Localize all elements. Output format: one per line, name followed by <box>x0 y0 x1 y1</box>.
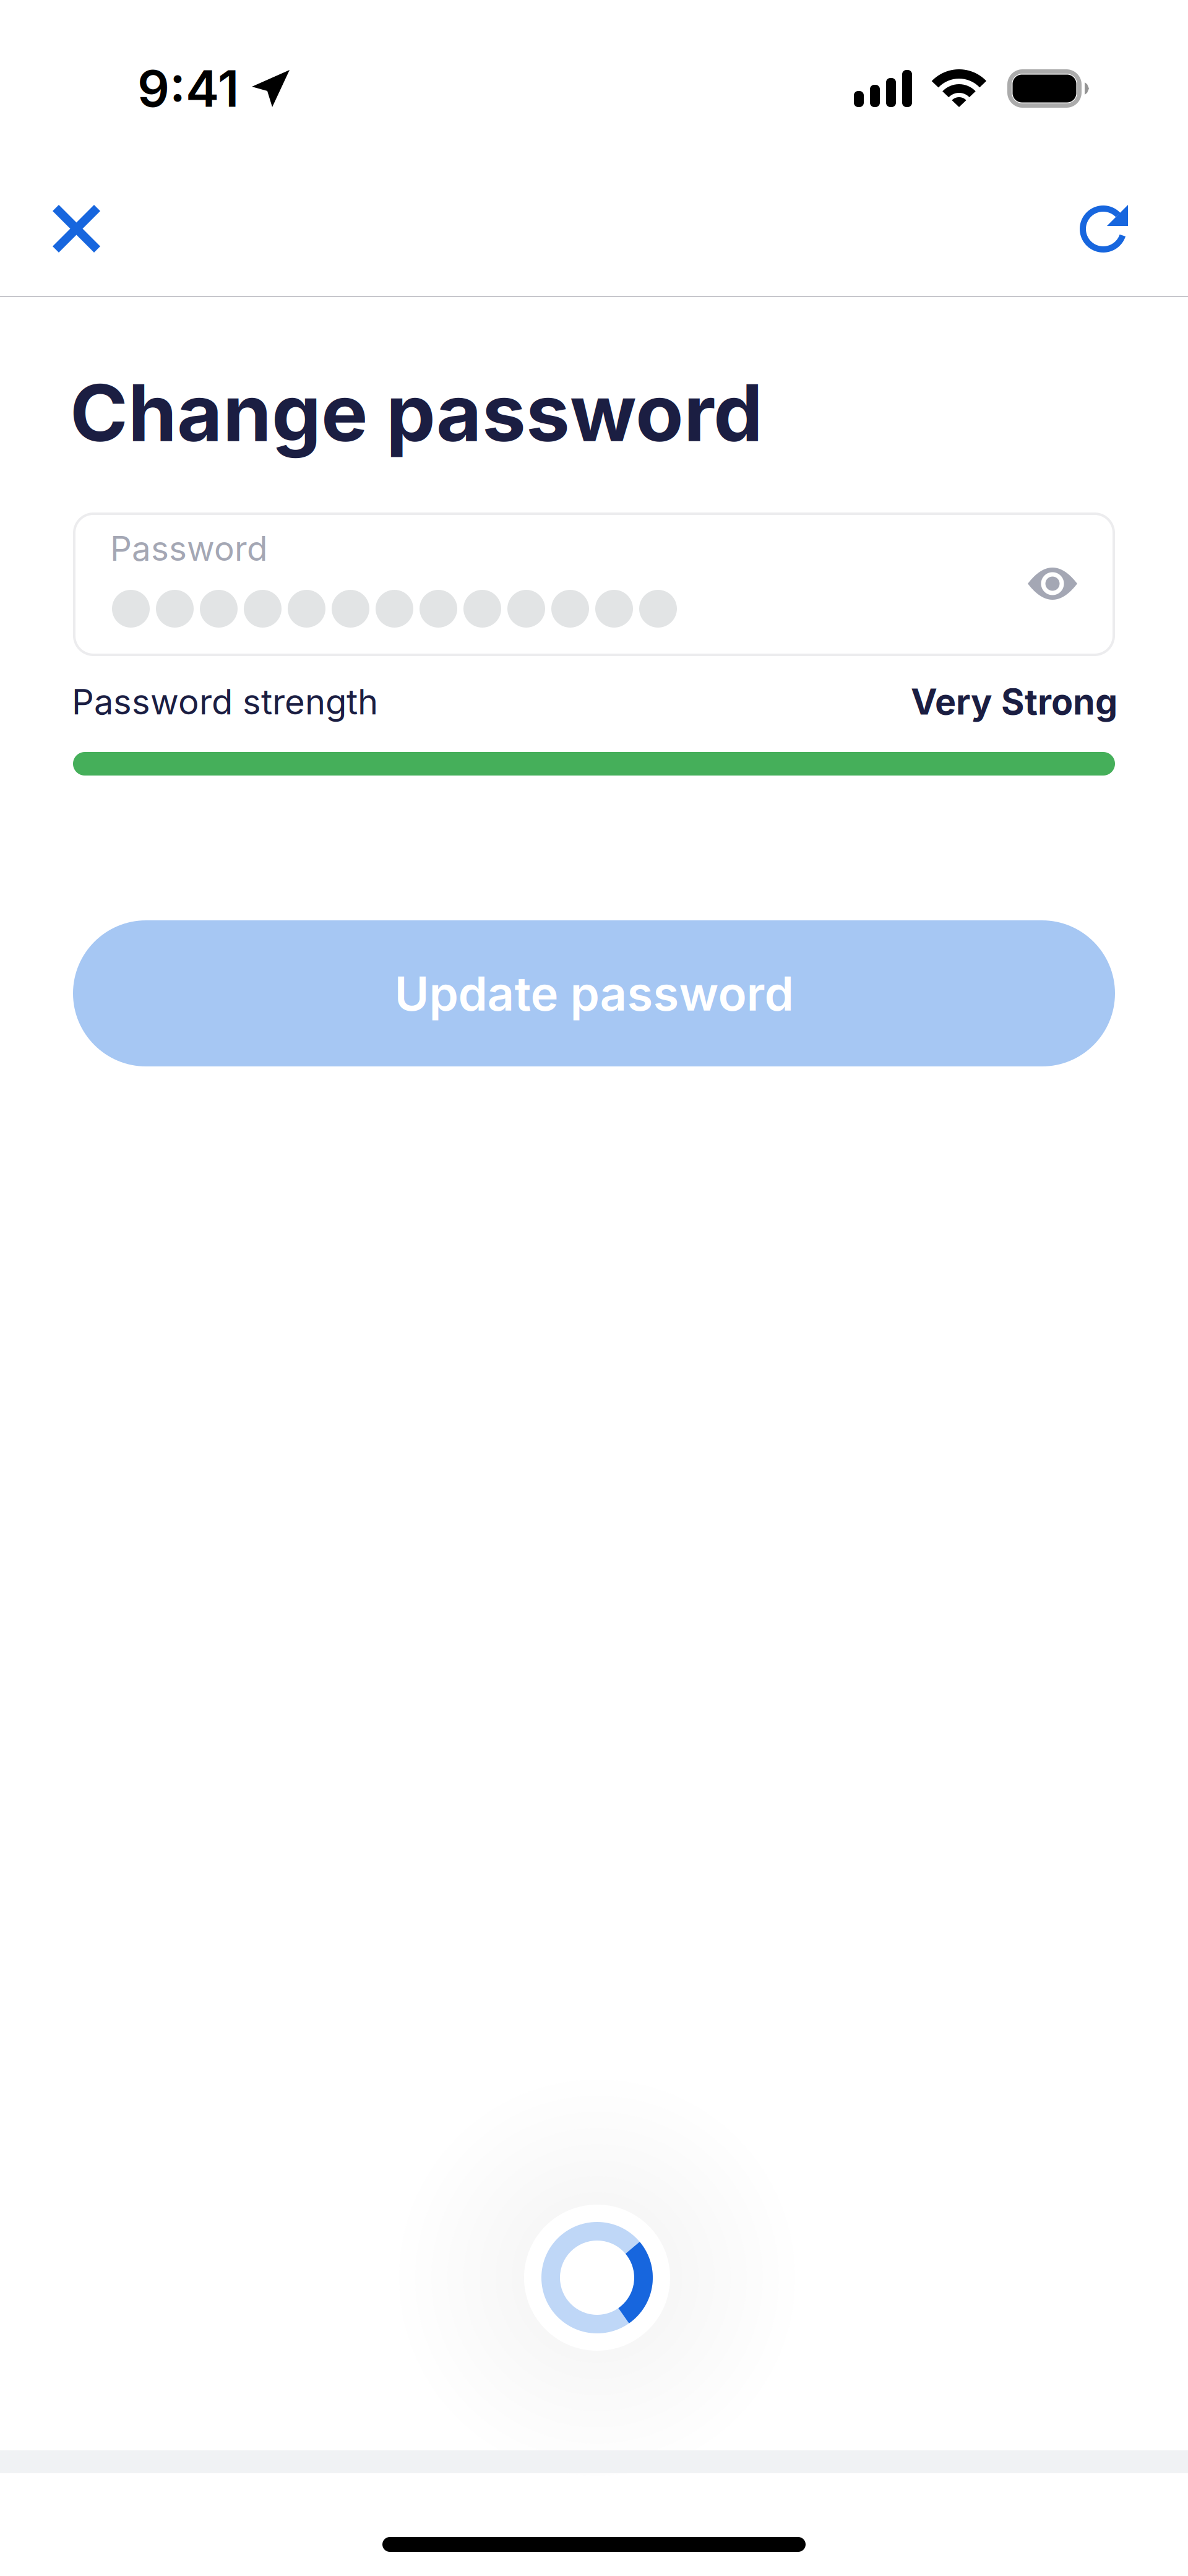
button[interactable]: Update password <box>73 920 1115 1066</box>
staticText: Password <box>110 528 267 569</box>
staticText: 9:41 <box>137 58 239 119</box>
staticText: Update password <box>394 965 794 1022</box>
staticText: Very Strong <box>911 680 1117 723</box>
button[interactable]: Close <box>30 183 123 275</box>
staticText: Password strength <box>72 681 378 723</box>
button[interactable]: Refresh <box>1057 183 1150 275</box>
staticText: Change password <box>70 365 763 460</box>
button[interactable]: Show password <box>1008 547 1097 620</box>
